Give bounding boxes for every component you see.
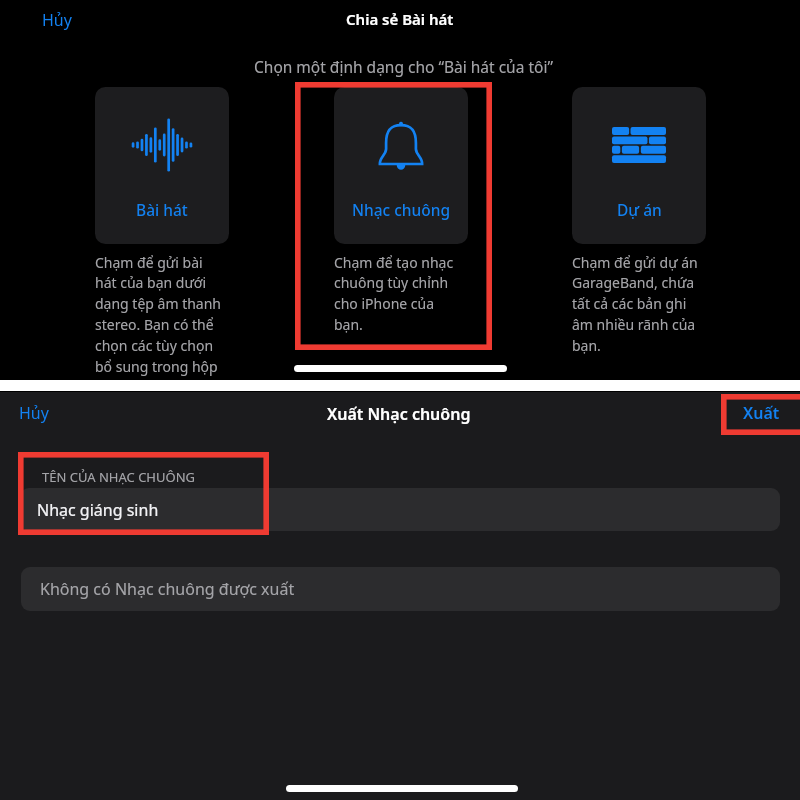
- button[interactable]: Nhạc chuông: [334, 87, 468, 244]
- staticText: Chạm để gửi bài hát của bạn dưới dạng tệ…: [95, 253, 224, 376]
- staticText: Hủy: [19, 402, 49, 424]
- staticText: Bài hát: [136, 199, 188, 220]
- button[interactable]: Bài hát: [95, 87, 229, 244]
- button[interactable]: Hủy: [7, 395, 60, 431]
- staticText: Nhạc giáng sinh: [37, 499, 159, 521]
- button[interactable]: Hủy: [31, 2, 83, 38]
- staticText: Chạm để tạo nhạc chuông tùy chỉnh cho iP…: [334, 253, 463, 334]
- button[interactable]: Dự án: [572, 87, 706, 244]
- staticText: Dự án: [617, 199, 662, 220]
- staticText: Xuất Nhạc chuông: [327, 403, 471, 425]
- button[interactable]: Không có Nhạc chuông được xuất: [21, 567, 780, 611]
- staticText: Chạm để gửi dự án GarageBand, chứa tất c…: [572, 253, 701, 355]
- staticText: TÊN CỦA NHẠC CHUÔNG: [42, 468, 195, 486]
- staticText: Chia sẻ Bài hát: [346, 9, 454, 29]
- button[interactable]: Nhạc giáng sinh: [20, 488, 780, 531]
- staticText: Chọn một định dạng cho “Bài hát của tôi”: [254, 56, 553, 77]
- staticText: Xuất: [743, 402, 780, 424]
- staticText: Không có Nhạc chuông được xuất: [40, 578, 295, 600]
- button[interactable]: Xuất: [731, 395, 791, 431]
- staticText: Nhạc chuông: [352, 199, 451, 220]
- staticText: Hủy: [42, 9, 72, 31]
